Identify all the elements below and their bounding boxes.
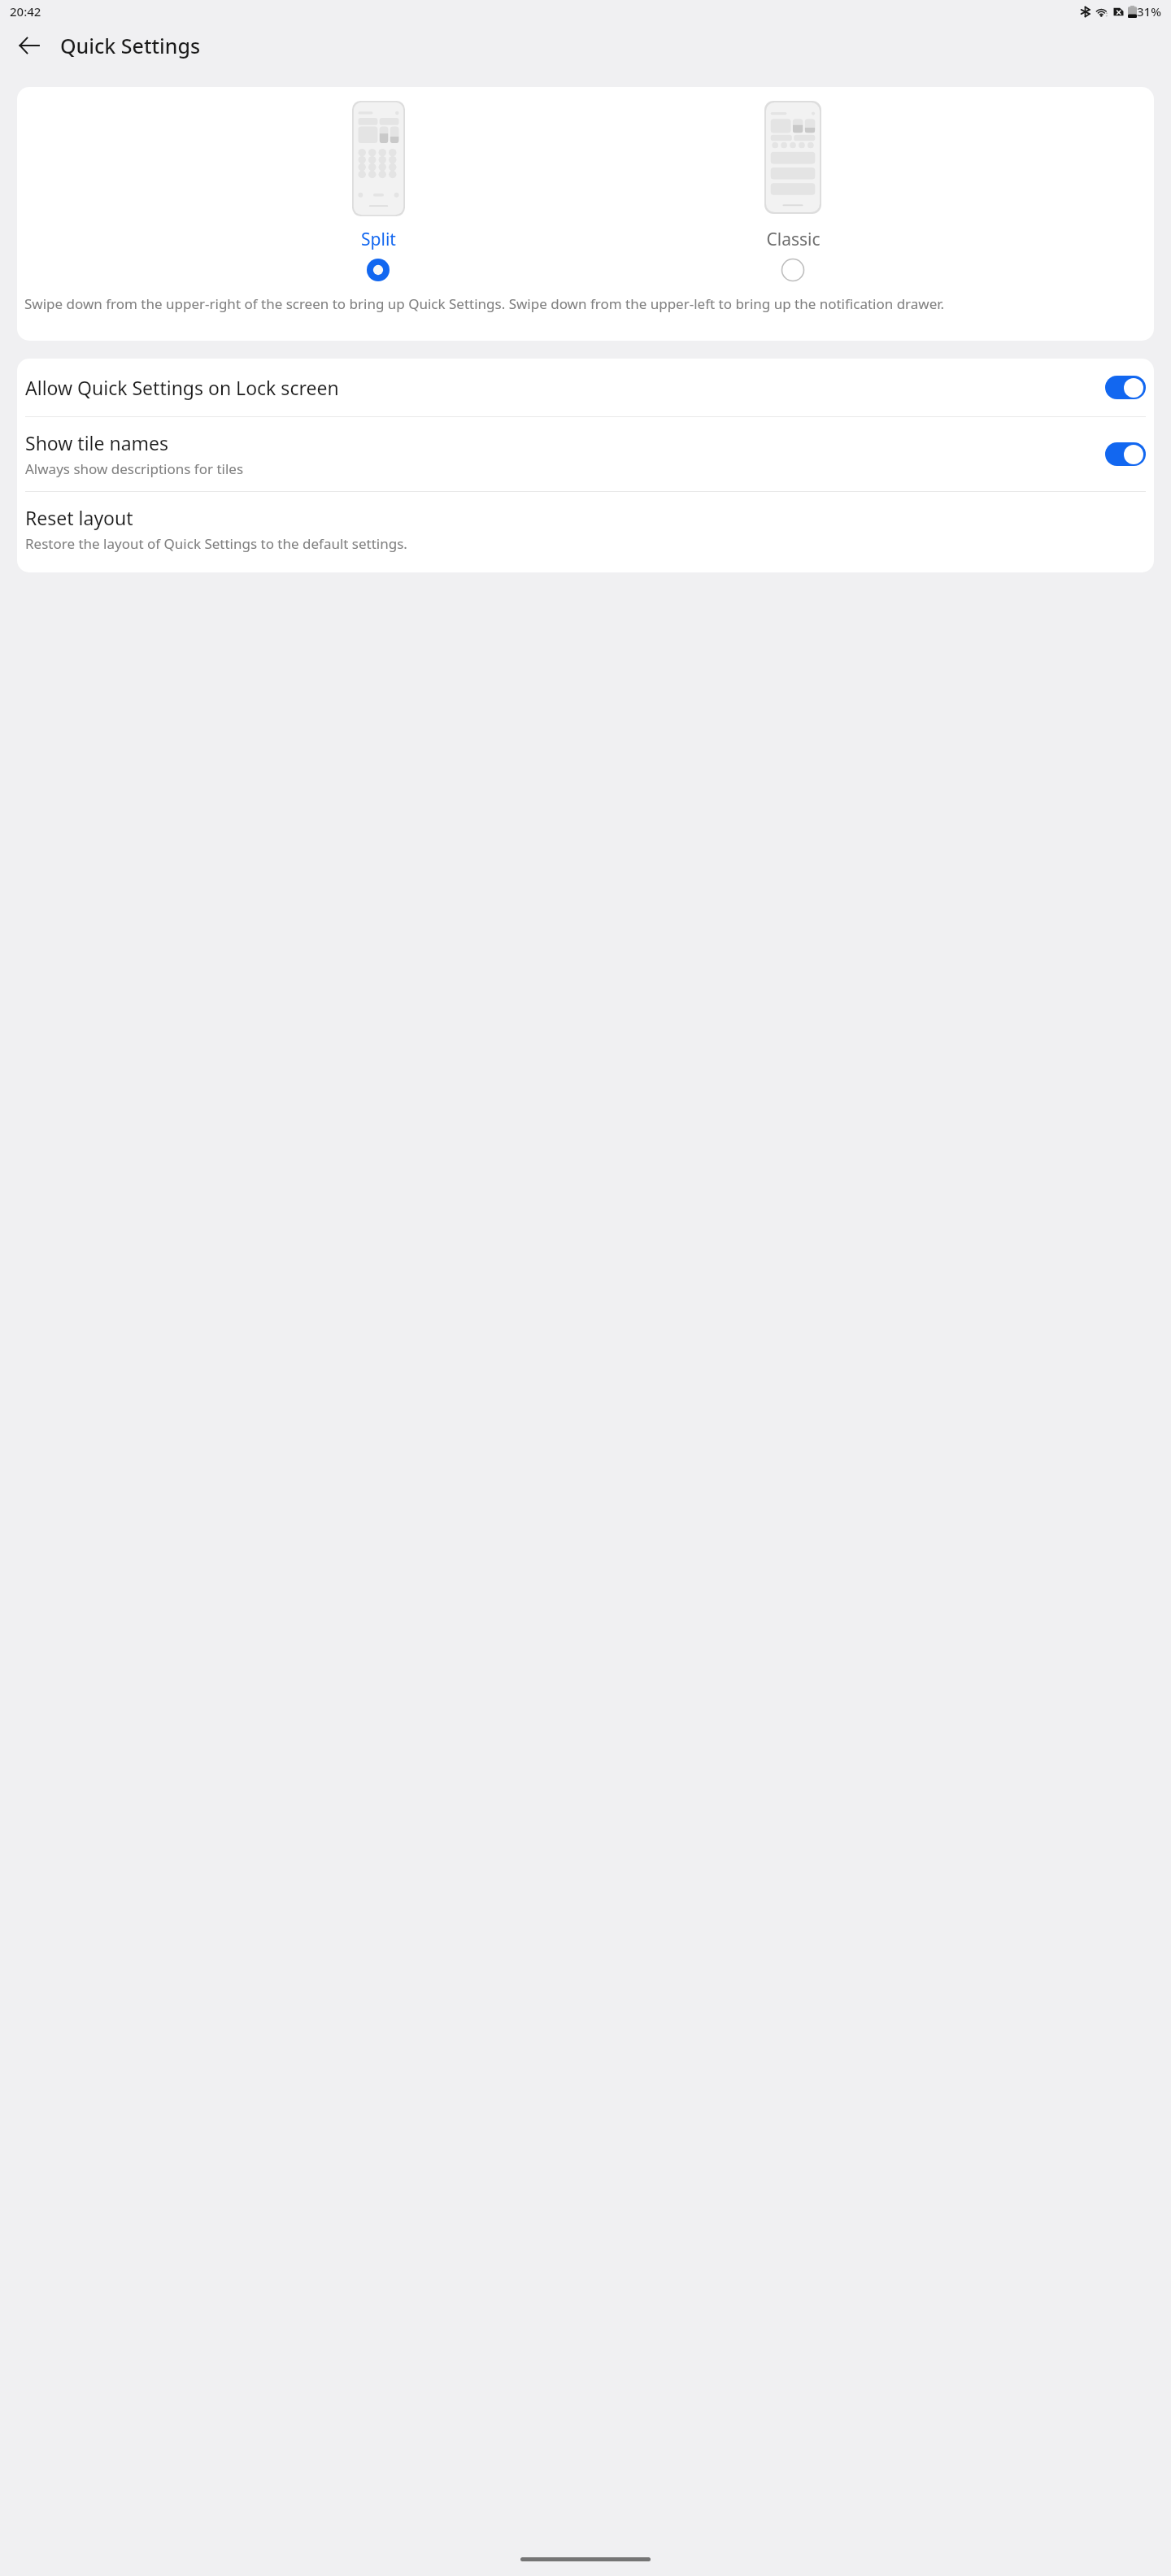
button[interactable]: Toggle [1105,376,1146,399]
staticText: Always show descriptions for tiles [25,459,244,478]
button[interactable]: Classic [740,228,846,281]
staticText: 31% [1137,3,1161,20]
staticText: Swipe down from the upper-right of the s… [24,294,945,313]
staticText: Allow Quick Settings on Lock screen [25,375,1099,400]
staticText: Classic [766,228,821,251]
button[interactable]: Reset layout [17,492,1154,566]
button[interactable]: Toggle [1105,442,1146,466]
button[interactable]: Back [10,26,49,65]
button[interactable]: Show tile names [17,417,1154,491]
staticText: Restore the layout of Quick Settings to … [25,534,407,553]
staticText: Quick Settings [60,32,201,59]
button[interactable]: Allow Quick Settings on Lock screen [17,359,1154,416]
staticText: Reset layout [25,505,133,530]
staticText: Show tile names [25,430,169,455]
button[interactable]: Split [325,228,431,281]
staticText: 20:42 [10,3,41,20]
staticText: Split [361,228,396,251]
